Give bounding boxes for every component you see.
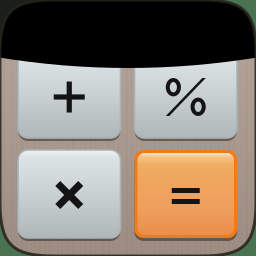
button[interactable]: Percent (134, 50, 237, 138)
button[interactable]: Multiply (18, 150, 120, 238)
button[interactable]: Equals (134, 150, 237, 238)
button[interactable]: Add (18, 50, 120, 138)
